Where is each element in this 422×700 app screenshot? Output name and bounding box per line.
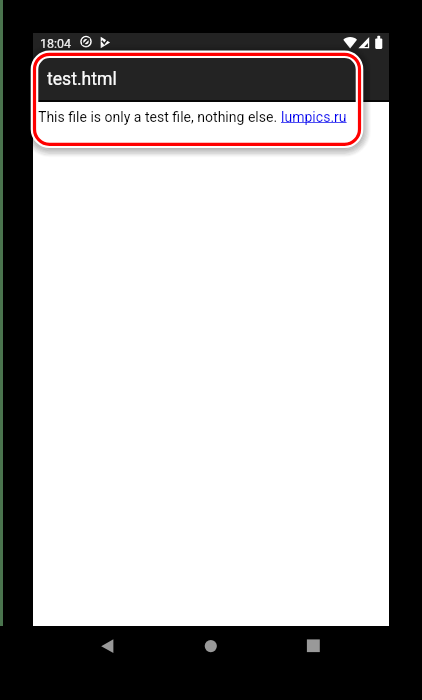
staticText: 18:04 bbox=[40, 36, 72, 51]
staticText: lumpics.ru bbox=[281, 109, 347, 125]
button[interactable]: Home bbox=[190, 633, 231, 660]
button[interactable]: test.html bbox=[33, 53, 389, 100]
staticText: This file is only a test file, nothing e… bbox=[38, 109, 281, 125]
button[interactable]: lumpics.ru bbox=[281, 109, 347, 125]
button[interactable]: Recents bbox=[293, 633, 334, 660]
button[interactable]: Back bbox=[87, 633, 128, 660]
staticText: test.html bbox=[47, 69, 117, 90]
